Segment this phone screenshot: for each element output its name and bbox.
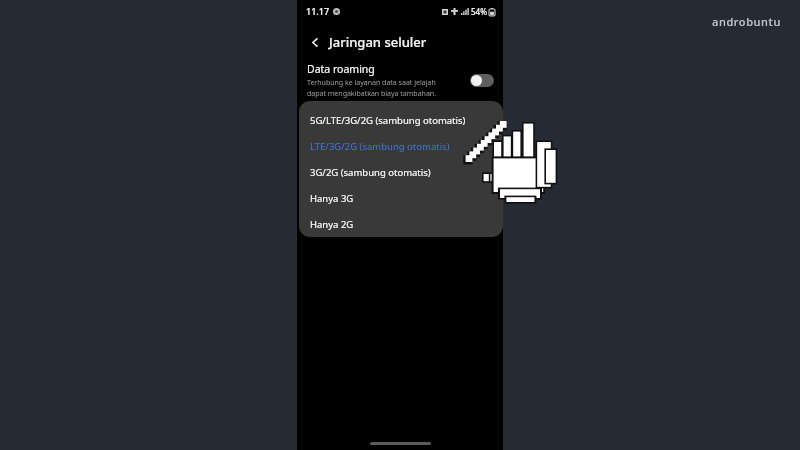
- button[interactable]: 3G/2G (sambung otomatis): [299, 159, 503, 185]
- button[interactable]: Hanya 3G: [299, 185, 503, 211]
- staticText: androbuntu: [712, 14, 781, 29]
- staticText: Hanya 2G: [310, 218, 354, 231]
- staticText: 11.17: [306, 5, 330, 17]
- staticText: 3G/2G (sambung otomatis): [310, 166, 431, 179]
- staticText: 5G/LTE/3G/2G (sambung otomatis): [310, 114, 466, 127]
- button[interactable]: 5G/LTE/3G/2G (sambung otomatis): [299, 107, 503, 133]
- staticText: Terhubung ke layanan data saat jelajah: [307, 78, 436, 88]
- button[interactable]: Hanya 2G: [299, 211, 503, 237]
- button[interactable]: LTE/3G/2G (sambung otomatis): [299, 133, 503, 159]
- button[interactable]: Data roaming toggle: [470, 74, 494, 87]
- staticText: dapat mengakibatkan biaya tambahan.: [307, 89, 437, 99]
- staticText: Data roaming: [307, 62, 375, 76]
- staticText: Jaringan seluler: [329, 33, 427, 51]
- button[interactable]: Back: [304, 31, 326, 53]
- staticText: LTE/3G/2G (sambung otomatis): [310, 140, 450, 153]
- button[interactable]: Data roaming: [297, 60, 503, 100]
- staticText: 54%: [471, 6, 487, 17]
- staticText: Hanya 3G: [310, 192, 354, 205]
